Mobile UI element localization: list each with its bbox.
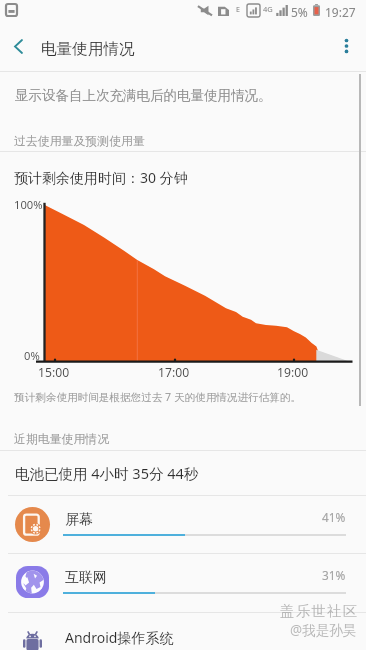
staticText: Android操作系统 bbox=[65, 628, 174, 647]
button[interactable]: More options bbox=[330, 26, 366, 71]
staticText: 31% bbox=[322, 567, 346, 583]
staticText: 盖乐世社区 bbox=[280, 602, 359, 620]
staticText: 5% bbox=[291, 4, 308, 20]
staticText: 预计剩余使用时间：30 分钟 bbox=[14, 168, 188, 187]
button[interactable]: Back bbox=[0, 26, 38, 71]
staticText: 互联网 bbox=[65, 569, 107, 587]
staticText: 电池已使用 4小时 35分 44秒 bbox=[15, 463, 199, 483]
staticText: 15:00 bbox=[38, 364, 70, 381]
staticText: 0% bbox=[24, 348, 40, 363]
staticText: 过去使用量及预测使用量 bbox=[14, 134, 145, 149]
staticText: 4G bbox=[263, 4, 273, 14]
staticText: @我是孙昊 bbox=[290, 621, 357, 639]
button[interactable]: 屏幕 bbox=[0, 495, 366, 553]
staticText: 电量使用情况 bbox=[41, 39, 135, 59]
staticText: 17:00 bbox=[158, 364, 190, 381]
staticText: 近期电量使用情况 bbox=[14, 432, 110, 447]
staticText: 41% bbox=[322, 509, 346, 525]
staticText: 屏幕 bbox=[65, 511, 93, 529]
staticText: 19:00 bbox=[277, 364, 309, 381]
staticText: 显示设备自上次充满电后的电量使用情况。 bbox=[15, 87, 272, 104]
staticText: 100% bbox=[14, 197, 43, 212]
staticText: E bbox=[236, 5, 240, 15]
button[interactable]: Android操作系统 bbox=[0, 612, 366, 650]
staticText: 19:27 bbox=[325, 4, 356, 20]
staticText: 预计剩余使用时间是根据您过去 7 天的使用情况进行估算的。 bbox=[14, 390, 302, 404]
button[interactable]: 互联网 bbox=[0, 553, 366, 611]
